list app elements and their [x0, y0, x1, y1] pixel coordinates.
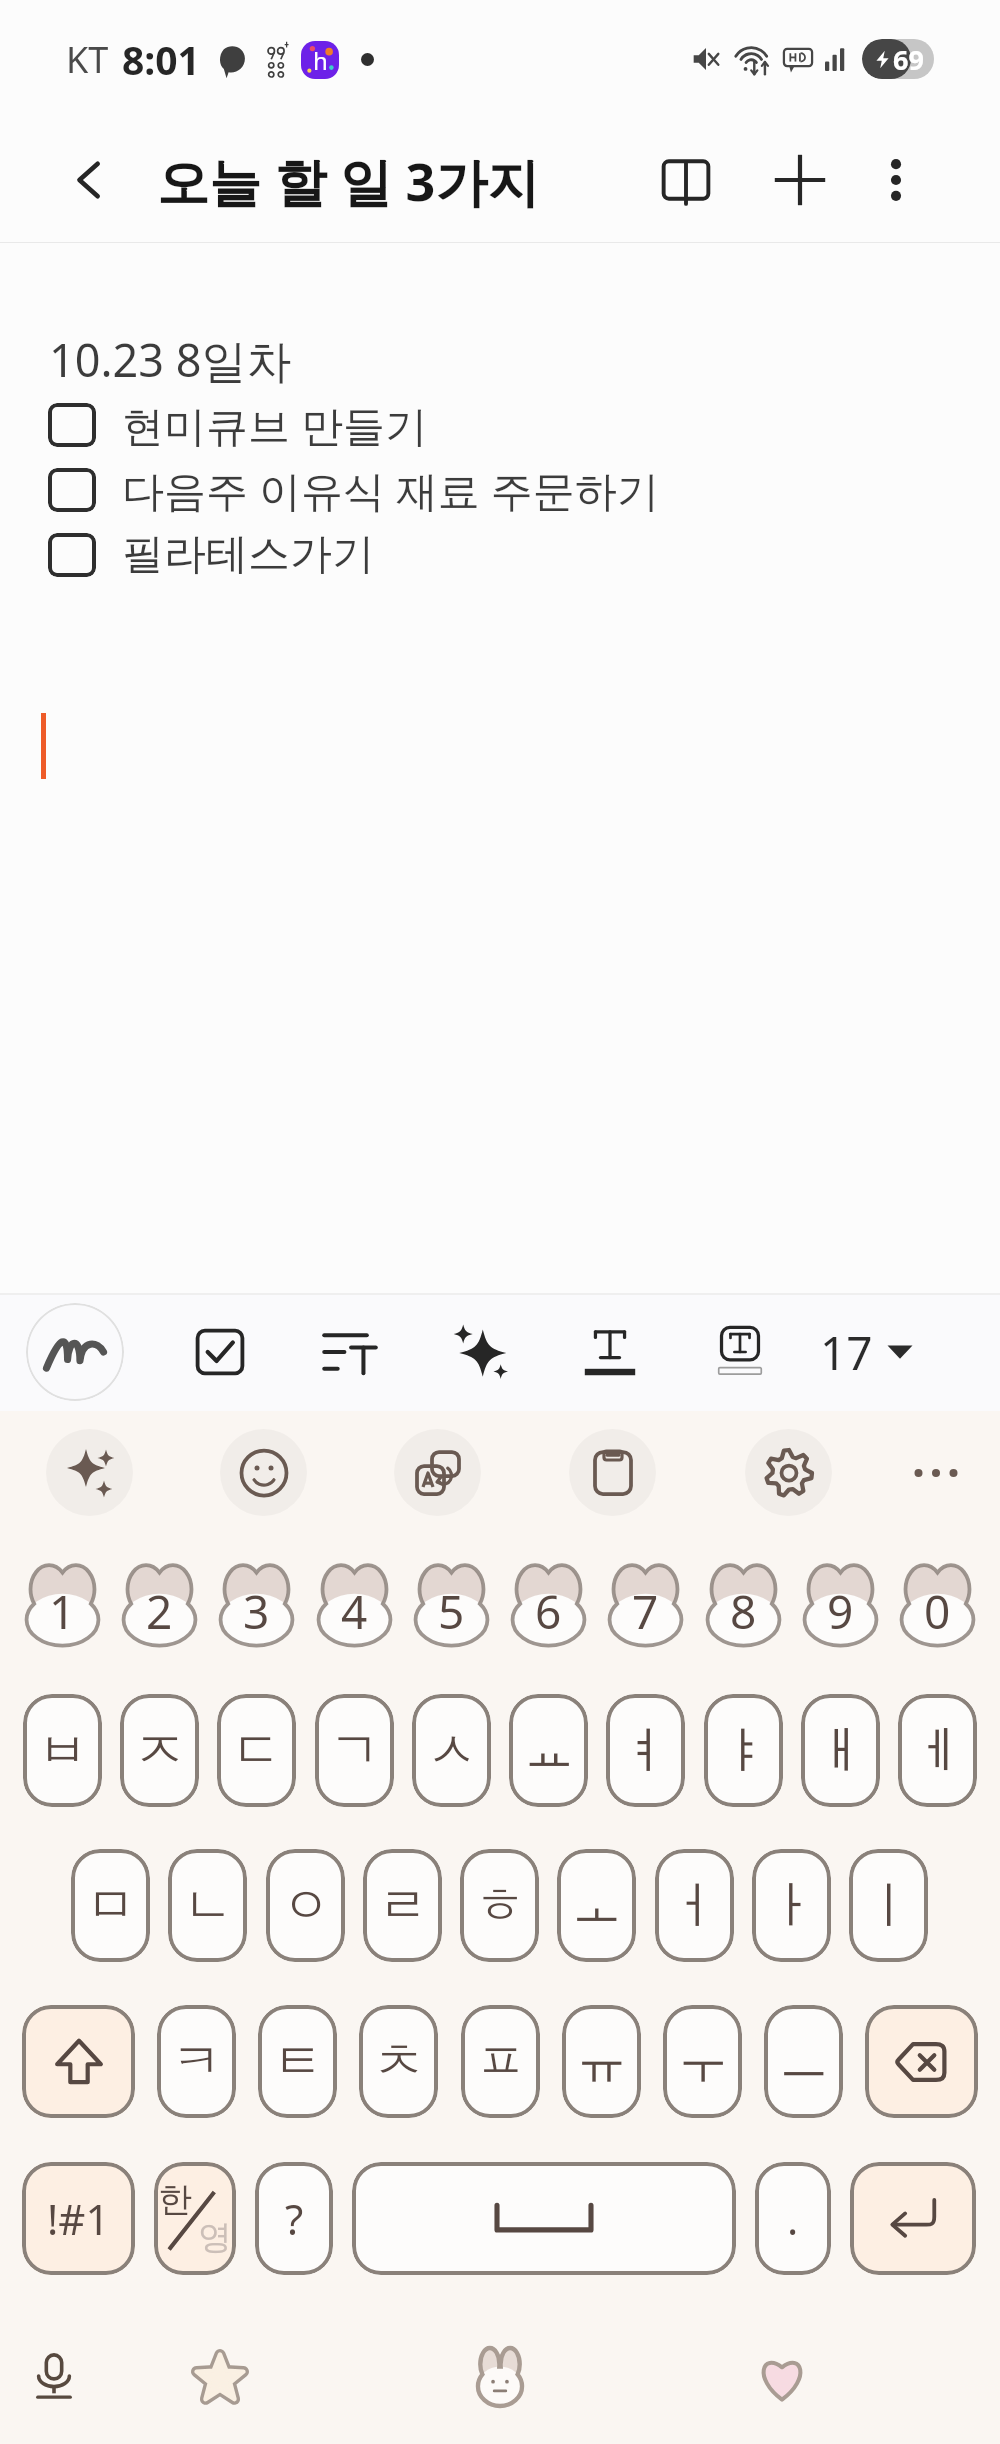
staticText: 영	[198, 2216, 232, 2259]
button[interactable]: Korean English toggle	[154, 2162, 236, 2275]
button[interactable]: ㄴ	[168, 1849, 247, 1962]
staticText: ㅠ	[577, 2030, 627, 2093]
staticText: 5	[438, 1580, 465, 1643]
button[interactable]: Emoji	[220, 1429, 307, 1516]
button[interactable]: ㅍ	[461, 2005, 540, 2118]
staticText: 2	[146, 1580, 173, 1643]
button[interactable]: 2	[120, 1559, 199, 1647]
button[interactable]: 다음주 이유식 재료 주문하기	[48, 457, 1000, 522]
button[interactable]: Translate	[394, 1429, 481, 1516]
staticText: ㅣ	[864, 1874, 914, 1937]
button[interactable]: ㅔ	[898, 1694, 977, 1807]
button[interactable]: ?	[255, 2162, 333, 2275]
staticText: 7	[632, 1580, 659, 1643]
button[interactable]: Backspace	[865, 2005, 978, 2118]
button[interactable]: 0	[898, 1559, 977, 1647]
staticText: ?	[285, 2190, 304, 2247]
button[interactable]: AI	[438, 1310, 522, 1394]
button[interactable]: ㅏ	[752, 1849, 831, 1962]
button[interactable]: Hearts	[740, 2335, 824, 2419]
button[interactable]: ㅅ	[412, 1694, 491, 1807]
button[interactable]: ㅌ	[258, 2005, 337, 2118]
button[interactable]: Add	[762, 142, 838, 218]
button[interactable]: Checklist	[178, 1310, 262, 1394]
staticText: 9	[827, 1580, 854, 1643]
staticText: ㄱ	[330, 1719, 380, 1782]
button[interactable]: 3	[217, 1559, 296, 1647]
button[interactable]: 5	[412, 1559, 491, 1647]
button[interactable]: .	[755, 2162, 831, 2275]
staticText: ㅓ	[670, 1874, 720, 1937]
button[interactable]: ㅐ	[801, 1694, 880, 1807]
button[interactable]: Settings	[745, 1429, 832, 1516]
button[interactable]: Back	[56, 146, 124, 214]
staticText: ㅊ	[374, 2030, 424, 2093]
button[interactable]: 4	[315, 1559, 394, 1647]
staticText: ㅈ	[135, 1719, 185, 1782]
staticText: !#1	[47, 2190, 110, 2247]
staticText: ㅇ	[281, 1874, 331, 1937]
staticText: 6	[535, 1580, 562, 1643]
button[interactable]: ㅠ	[562, 2005, 641, 2118]
button[interactable]: Clipboard	[569, 1429, 656, 1516]
button[interactable]: Reading mode	[648, 142, 724, 218]
button[interactable]: ㅁ	[71, 1849, 150, 1962]
button[interactable]: ㅛ	[509, 1694, 588, 1807]
button[interactable]: 6	[509, 1559, 588, 1647]
staticText: ㅏ	[767, 1874, 817, 1937]
button[interactable]: ㅎ	[460, 1849, 539, 1962]
button[interactable]: ㅊ	[359, 2005, 438, 2118]
button[interactable]: Shift	[22, 2005, 135, 2118]
button[interactable]: AI suggestions	[46, 1429, 133, 1516]
button[interactable]: 17	[820, 1314, 913, 1390]
staticText: 8	[730, 1580, 757, 1643]
button[interactable]: 1	[23, 1559, 102, 1647]
button[interactable]: ㅜ	[663, 2005, 742, 2118]
button[interactable]: Handwriting	[26, 1303, 124, 1401]
staticText: 현미큐브 만들기	[122, 396, 427, 453]
button[interactable]: ㅡ	[764, 2005, 843, 2118]
button[interactable]: 7	[606, 1559, 685, 1647]
button[interactable]: ㅑ	[704, 1694, 783, 1807]
staticText: ㅍ	[476, 2030, 526, 2093]
button[interactable]: Voice input	[12, 2335, 96, 2419]
button[interactable]: 9	[801, 1559, 880, 1647]
staticText: 오늘 할 일 3가지	[157, 145, 540, 216]
button[interactable]: Space	[352, 2162, 736, 2275]
button[interactable]: ㅕ	[606, 1694, 685, 1807]
staticText: ㄷ	[232, 1719, 282, 1782]
staticText: ㅐ	[816, 1719, 866, 1782]
button[interactable]: ㅣ	[849, 1849, 928, 1962]
staticText: ㅁ	[86, 1874, 136, 1937]
button[interactable]: ㅈ	[120, 1694, 199, 1807]
staticText: 69	[893, 41, 924, 78]
button[interactable]: 필라테스가기	[48, 522, 1000, 587]
button[interactable]: ㅗ	[557, 1849, 636, 1962]
button[interactable]: ㅂ	[23, 1694, 102, 1807]
button[interactable]: ㅋ	[157, 2005, 236, 2118]
button[interactable]: ㅇ	[266, 1849, 345, 1962]
button[interactable]: ㄹ	[363, 1849, 442, 1962]
button[interactable]: Paragraph	[308, 1310, 392, 1394]
staticText: 17	[820, 1321, 873, 1384]
button[interactable]: Text box	[698, 1310, 782, 1394]
staticText: h	[313, 44, 328, 77]
button[interactable]: Enter	[850, 2162, 976, 2275]
staticText: ㅎ	[475, 1874, 525, 1937]
button[interactable]: ㅓ	[655, 1849, 734, 1962]
button[interactable]: ㄷ	[217, 1694, 296, 1807]
button[interactable]: More options	[858, 142, 934, 218]
button[interactable]: 8	[704, 1559, 783, 1647]
button[interactable]: ㄱ	[315, 1694, 394, 1807]
staticText: 1	[49, 1580, 76, 1643]
button[interactable]: !#1	[22, 2162, 135, 2275]
staticText: 10.23 8일차	[49, 329, 292, 390]
button[interactable]: More	[892, 1429, 979, 1516]
staticText: 다음주 이유식 재료 주문하기	[122, 461, 659, 518]
staticText: 8:01	[122, 33, 200, 86]
button[interactable]: 현미큐브 만들기	[48, 392, 1000, 457]
button[interactable]: Stickers	[458, 2335, 542, 2419]
staticText: 0	[924, 1580, 951, 1643]
button[interactable]: Favorites	[178, 2335, 262, 2419]
button[interactable]: Text style	[568, 1310, 652, 1394]
